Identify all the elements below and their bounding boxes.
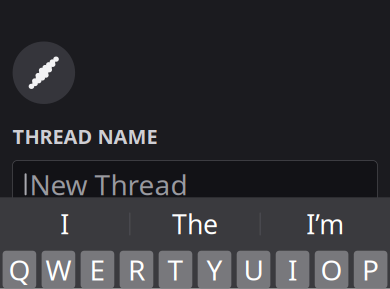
button[interactable]: U <box>237 251 270 288</box>
staticText: W <box>45 251 71 288</box>
staticText: The <box>172 206 218 242</box>
staticText: T <box>167 251 183 288</box>
staticText: THREAD NAME <box>13 123 158 150</box>
button[interactable]: P <box>354 251 387 288</box>
button[interactable]: I <box>0 197 129 251</box>
button[interactable]: E <box>81 251 114 288</box>
button[interactable]: T <box>159 251 192 288</box>
staticText: Q <box>8 251 30 288</box>
staticText: I’m <box>306 206 344 242</box>
button[interactable]: Y <box>198 251 231 288</box>
staticText: U <box>243 251 263 288</box>
staticText: O <box>321 251 343 288</box>
staticText: New Thread <box>30 166 188 203</box>
button[interactable]: O <box>315 251 348 288</box>
staticText: E <box>89 251 105 288</box>
staticText: I <box>60 206 69 242</box>
button[interactable]: The <box>130 197 260 251</box>
button[interactable]: New Thread <box>13 161 377 208</box>
button[interactable]: Thread icon <box>13 41 75 104</box>
staticText: P <box>362 251 379 288</box>
staticText: R <box>128 251 145 288</box>
button[interactable]: I <box>276 251 309 288</box>
button[interactable]: W <box>42 251 75 288</box>
button[interactable]: I’m <box>261 197 390 251</box>
button[interactable]: Q <box>3 251 36 288</box>
button[interactable]: R <box>120 251 153 288</box>
staticText: I <box>288 251 297 288</box>
staticText: Y <box>206 251 222 288</box>
